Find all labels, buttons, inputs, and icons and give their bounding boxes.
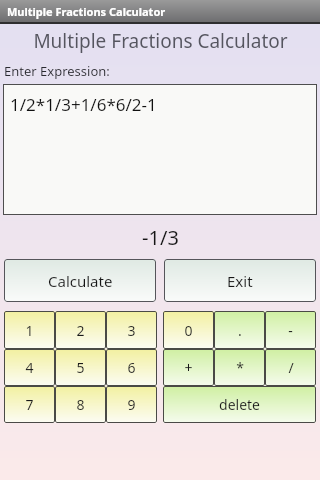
- staticText: Multiple Fractions Calculator: [7, 4, 166, 19]
- staticText: 1/2*1/3+1/6*6/2-1: [10, 93, 157, 116]
- button[interactable]: +: [163, 349, 214, 386]
- staticText: Enter Expression:: [4, 62, 110, 80]
- button[interactable]: 2: [55, 311, 106, 349]
- button[interactable]: Exit: [164, 259, 316, 302]
- staticText: +: [184, 358, 193, 377]
- staticText: 1: [25, 321, 34, 340]
- button[interactable]: delete: [163, 386, 316, 423]
- staticText: -: [288, 321, 293, 340]
- button[interactable]: *: [214, 349, 265, 386]
- button[interactable]: /: [265, 349, 316, 386]
- button[interactable]: 4: [4, 349, 55, 386]
- staticText: Exit: [227, 271, 253, 291]
- button[interactable]: 8: [55, 386, 106, 423]
- button[interactable]: 7: [4, 386, 55, 423]
- staticText: *: [236, 358, 244, 377]
- button[interactable]: 9: [106, 386, 157, 423]
- staticText: 2: [76, 321, 85, 340]
- button[interactable]: -: [265, 311, 316, 349]
- staticText: .: [238, 321, 242, 340]
- staticText: 8: [76, 395, 85, 414]
- button[interactable]: 5: [55, 349, 106, 386]
- staticText: /: [288, 358, 294, 377]
- staticText: -1/3: [142, 224, 179, 251]
- button[interactable]: 3: [106, 311, 157, 349]
- staticText: Multiple Fractions Calculator: [33, 28, 288, 54]
- button[interactable]: 6: [106, 349, 157, 386]
- staticText: 5: [76, 358, 85, 377]
- button[interactable]: .: [214, 311, 265, 349]
- button[interactable]: 1/2*1/3+1/6*6/2-1: [3, 84, 317, 215]
- button[interactable]: 1: [4, 311, 55, 349]
- staticText: 7: [25, 395, 34, 414]
- staticText: Calculate: [48, 271, 113, 291]
- staticText: 3: [127, 321, 136, 340]
- button[interactable]: 0: [163, 311, 214, 349]
- staticText: 9: [127, 395, 136, 414]
- staticText: 0: [184, 321, 193, 340]
- staticText: delete: [219, 395, 260, 414]
- staticText: 4: [25, 358, 34, 377]
- button[interactable]: Calculate: [4, 259, 156, 302]
- staticText: 6: [127, 358, 136, 377]
